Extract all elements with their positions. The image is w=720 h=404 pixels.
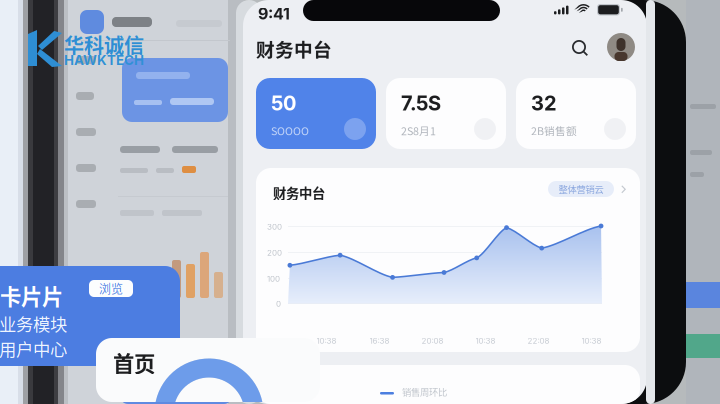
button[interactable]: Profile — [607, 33, 635, 61]
staticText: 32 — [531, 91, 557, 115]
button[interactable]: 7.5S — [386, 78, 506, 149]
staticText: 20:08 — [421, 336, 443, 346]
staticText: 300 — [267, 222, 282, 232]
staticText: 10:38 — [581, 336, 601, 346]
button[interactable]: 32 — [516, 78, 636, 149]
staticText: 16:38 — [369, 336, 389, 346]
staticText: 整体营销云 — [558, 182, 603, 196]
staticText: 用户中心 — [0, 336, 67, 361]
staticText: 200 — [267, 248, 282, 258]
staticText: 10:38 — [475, 336, 495, 346]
staticText: 0 — [276, 299, 281, 309]
staticText: 华科诚信 — [64, 30, 144, 59]
staticText: 财务中台 — [256, 35, 332, 62]
staticText: 50 — [271, 91, 296, 115]
staticText: HAWKTECH — [64, 52, 144, 68]
staticText: 浏览 — [99, 280, 123, 297]
staticText: 财务中台 — [273, 183, 325, 202]
button[interactable]: 50 — [256, 78, 376, 149]
staticText: 销售周环比 — [402, 385, 447, 398]
staticText: 7.5S — [401, 91, 441, 115]
staticText: 2B销售额 — [531, 123, 577, 138]
button[interactable]: 整体营销云 — [548, 181, 614, 197]
button[interactable]: 浏览 — [89, 280, 133, 297]
staticText: 10:38 — [316, 336, 336, 346]
staticText: 2S8月1 — [401, 123, 436, 138]
staticText: 22:08 — [527, 336, 549, 346]
staticText: SOOOO — [271, 123, 309, 138]
button[interactable]: Search — [566, 34, 595, 63]
staticText: 100 — [267, 274, 280, 284]
staticText: 首页 — [113, 347, 155, 378]
staticText: 9:41 — [258, 4, 290, 23]
staticText: 业务模块 — [0, 311, 67, 336]
staticText: 卡片片 — [0, 280, 63, 311]
